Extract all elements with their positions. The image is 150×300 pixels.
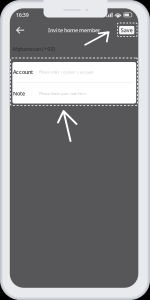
staticText: Please leave your note here.	[39, 91, 87, 96]
staticText: Invite home member	[48, 27, 100, 34]
staticText: 16:39	[16, 11, 29, 18]
staticText: Account	[13, 68, 33, 76]
staticText: Please enter receiver's account	[39, 69, 93, 75]
button[interactable]: Back	[13, 23, 27, 37]
button[interactable]: Note	[12, 83, 136, 104]
button[interactable]: Save	[119, 26, 134, 34]
staticText: Afghanistan (+93)	[12, 45, 55, 52]
button[interactable]: Account	[12, 62, 136, 82]
staticText: Note	[13, 90, 25, 97]
staticText: Save	[121, 27, 133, 34]
